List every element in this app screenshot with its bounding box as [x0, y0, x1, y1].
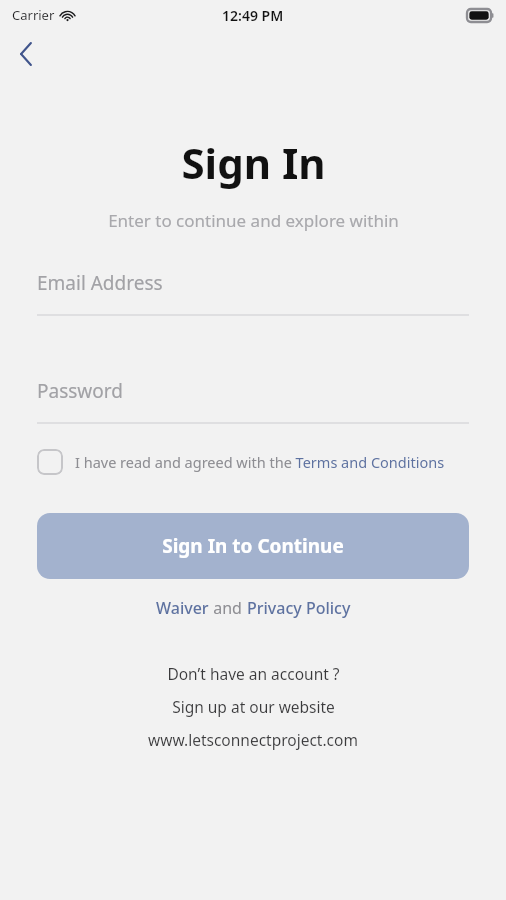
staticText: I have read and agreed with the Terms an…	[75, 452, 445, 472]
staticText: Sign In	[181, 134, 326, 191]
button[interactable]: Sign In to Continue	[37, 513, 469, 579]
staticText: Enter to continue and explore within	[108, 209, 399, 232]
button[interactable]: www.letsconnectproject.com	[148, 729, 358, 750]
staticText: Password	[37, 378, 123, 404]
staticText: Waiver	[156, 597, 209, 619]
staticText: Sign up at our website	[172, 696, 335, 717]
staticText: Carrier	[12, 6, 55, 24]
button[interactable]: I have read and agreed with the Terms an…	[37, 449, 469, 475]
button[interactable]: Privacy Policy	[247, 597, 351, 619]
staticText: Don’t have an account ?	[167, 663, 340, 684]
staticText: Email Address	[37, 270, 163, 296]
staticText: www.letsconnectproject.com	[148, 729, 358, 750]
button[interactable]: Back	[6, 34, 46, 74]
staticText: Privacy Policy	[247, 597, 351, 619]
staticText: and	[209, 597, 247, 619]
button[interactable]: Waiver	[156, 597, 209, 619]
staticText: 12:49 PM	[222, 6, 284, 25]
staticText: Sign In to Continue	[162, 533, 344, 559]
button[interactable]: Password	[37, 378, 469, 424]
button[interactable]: Email Address	[37, 270, 469, 316]
